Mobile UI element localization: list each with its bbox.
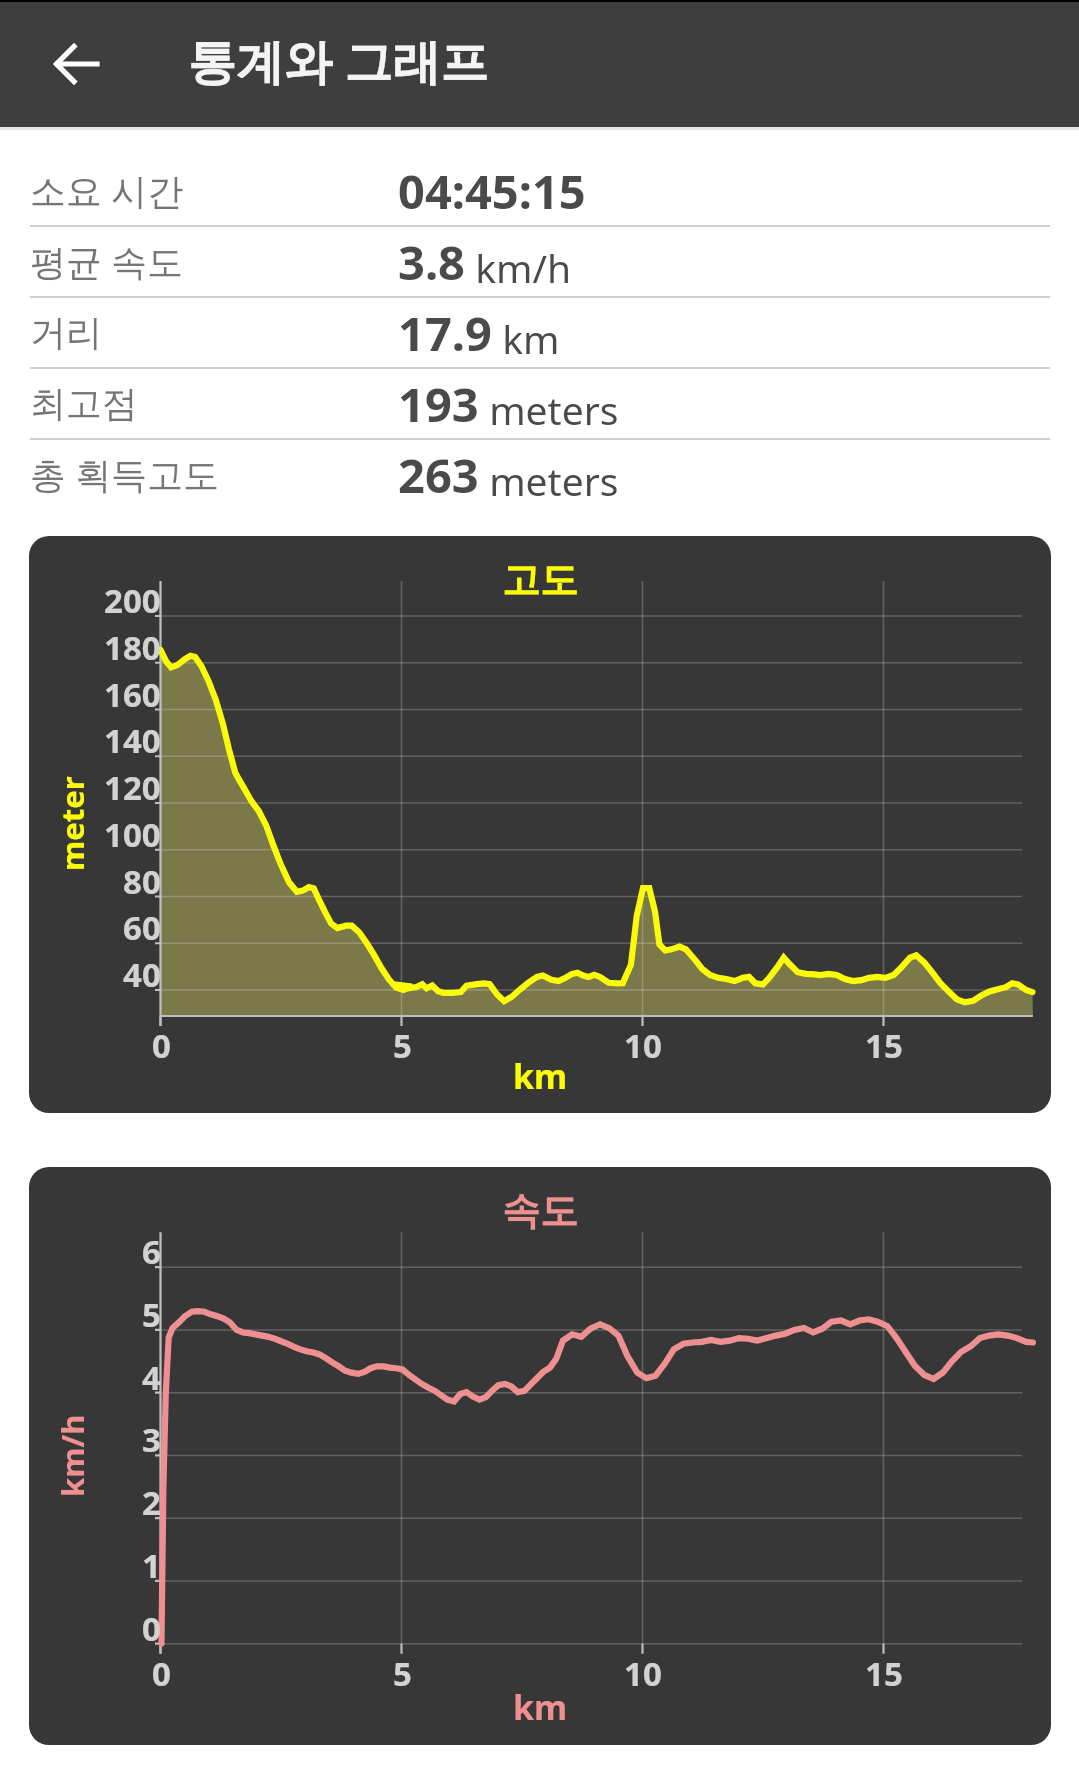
button[interactable]: Back xyxy=(32,20,120,108)
staticText: 소요 시간 xyxy=(30,166,184,215)
staticText: 80 xyxy=(123,859,161,904)
staticText: 0 xyxy=(152,1023,171,1067)
staticText: 10 xyxy=(624,1651,662,1695)
button[interactable]: 속도 xyxy=(29,1167,1051,1745)
staticText: meter xyxy=(51,776,93,871)
staticText: 3 xyxy=(142,1417,161,1462)
staticText: meters xyxy=(479,454,619,507)
button[interactable]: 소요 시간 xyxy=(0,156,1079,225)
staticText: meters xyxy=(479,383,619,436)
staticText: 평균 속도 xyxy=(30,237,184,286)
button[interactable]: 평균 속도 xyxy=(0,227,1079,296)
staticText: 180 xyxy=(104,625,161,670)
staticText: 고도 xyxy=(502,556,578,604)
staticText: 193 xyxy=(398,372,479,436)
button[interactable]: 고도 xyxy=(29,536,1051,1113)
staticText: 3.8 xyxy=(398,230,465,294)
staticText: 5 xyxy=(142,1292,161,1337)
button[interactable]: 총 획득고도 xyxy=(0,440,1079,509)
staticText: 2 xyxy=(142,1480,161,1525)
staticText: 속도 xyxy=(502,1187,578,1235)
staticText: 0 xyxy=(142,1606,161,1651)
staticText: 40 xyxy=(123,952,161,997)
staticText: 60 xyxy=(123,905,161,950)
button[interactable]: 거리 xyxy=(0,298,1079,367)
staticText: 5 xyxy=(393,1023,412,1067)
staticText: km xyxy=(513,1684,568,1730)
staticText: 6 xyxy=(142,1229,161,1274)
staticText: 100 xyxy=(104,812,161,857)
staticText: km/h xyxy=(51,1414,93,1497)
staticText: 통계와 그래프 xyxy=(188,28,489,94)
staticText: 1 xyxy=(142,1543,161,1588)
staticText: 15 xyxy=(865,1023,903,1067)
staticText: 4 xyxy=(142,1355,161,1400)
staticText: km xyxy=(492,312,560,365)
staticText: km/h xyxy=(465,241,572,294)
staticText: 거리 xyxy=(30,310,102,355)
button[interactable]: 최고점 xyxy=(0,369,1079,438)
staticText: 140 xyxy=(104,718,161,763)
staticText: 15 xyxy=(865,1651,903,1695)
staticText: 200 xyxy=(104,578,161,623)
staticText: 263 xyxy=(398,443,479,507)
staticText: 120 xyxy=(104,765,161,810)
staticText: 5 xyxy=(393,1651,412,1695)
staticText: 160 xyxy=(104,672,161,717)
staticText: km xyxy=(513,1053,568,1099)
staticText: 17.9 xyxy=(398,301,492,365)
staticText: 총 획득고도 xyxy=(30,450,220,499)
staticText: 0 xyxy=(152,1651,171,1695)
staticText: 최고점 xyxy=(30,381,138,426)
staticText: 10 xyxy=(624,1023,662,1067)
staticText: 04:45:15 xyxy=(398,159,586,223)
